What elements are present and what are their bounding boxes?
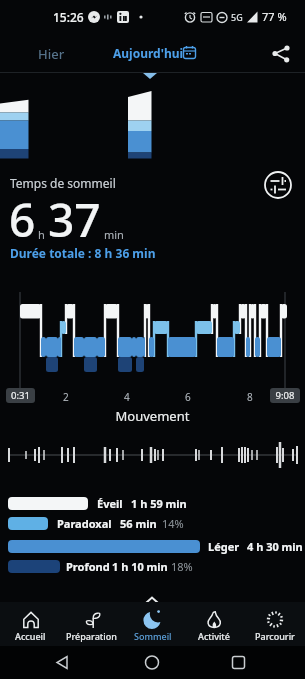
staticText: Éveil — [97, 496, 123, 511]
staticText: 0:31 — [6, 389, 35, 402]
staticText: Léger — [208, 539, 240, 554]
staticText: Mouvement — [0, 407, 305, 425]
staticText: 77 % — [262, 9, 287, 24]
staticText: 18% — [171, 559, 193, 574]
staticText: Parcourir — [255, 630, 295, 642]
staticText: 5G — [231, 11, 243, 23]
button[interactable] — [263, 170, 293, 200]
staticText: 1 h 59 min — [131, 496, 187, 511]
staticText: 14% — [162, 516, 184, 531]
staticText: Durée totale : 8 h 36 min — [10, 245, 156, 261]
staticText: 6 — [185, 390, 191, 404]
staticText: min — [104, 227, 124, 242]
staticText: 9:08 — [270, 389, 300, 402]
staticText: 4 — [124, 390, 130, 404]
staticText: 37 — [48, 188, 101, 251]
staticText: Hier — [38, 45, 65, 63]
staticText: 1 h 10 min — [112, 559, 168, 574]
button[interactable]: Préparation — [61, 602, 122, 646]
button[interactable]: Sommeil — [122, 602, 183, 646]
button[interactable] — [268, 42, 298, 68]
staticText: 2 — [63, 390, 69, 404]
staticText: h — [38, 227, 45, 242]
staticText: Sommeil — [134, 630, 172, 642]
staticText: Accueil — [15, 630, 46, 642]
button[interactable] — [127, 646, 177, 679]
button[interactable]: Aujourd'hui — [105, 38, 200, 66]
staticText: Paradoxal — [57, 516, 112, 531]
button[interactable] — [40, 646, 90, 679]
button[interactable]: Accueil — [0, 602, 61, 646]
button[interactable]: Activité — [183, 602, 244, 646]
button[interactable]: Hier — [26, 38, 76, 66]
staticText: 4 h 30 min — [247, 539, 303, 554]
staticText: 8 — [247, 390, 253, 404]
staticText: Temps de sommeil — [10, 175, 116, 191]
staticText: Préparation — [66, 630, 117, 642]
button[interactable]: Parcourir — [244, 602, 305, 646]
staticText: Profond — [66, 559, 110, 574]
staticText: 56 min — [120, 516, 157, 531]
staticText: Activité — [198, 630, 230, 642]
button[interactable] — [213, 646, 263, 679]
staticText: 15:26 — [53, 9, 84, 25]
staticText: Aujourd'hui — [113, 45, 184, 61]
staticText: 6 — [9, 188, 36, 251]
